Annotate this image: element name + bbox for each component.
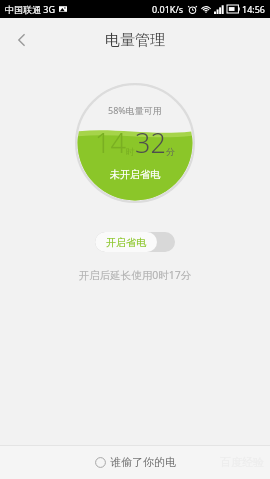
button[interactable]: Back <box>4 22 40 58</box>
staticText: 开启省电 <box>106 236 146 249</box>
staticText: 时 <box>126 146 135 157</box>
staticText: 0.01K/s <box>152 3 184 15</box>
staticText: 58%电量可用 <box>108 104 162 116</box>
staticText: 中国联通 3G <box>5 3 56 15</box>
staticText: 32 <box>135 124 166 161</box>
staticText: 开启后延长使用0时17分 <box>0 268 270 282</box>
staticText: 14:56 <box>242 3 266 15</box>
staticText: 未开启省电 <box>110 168 160 181</box>
staticText: 谁偷了你的电 <box>110 455 176 469</box>
staticText: 分 <box>166 146 175 157</box>
button[interactable]: 谁偷了你的电 <box>87 451 184 473</box>
staticText: 14 <box>95 124 126 161</box>
staticText: 电量管理 <box>105 31 165 50</box>
button[interactable]: 开启省电 <box>95 232 175 252</box>
